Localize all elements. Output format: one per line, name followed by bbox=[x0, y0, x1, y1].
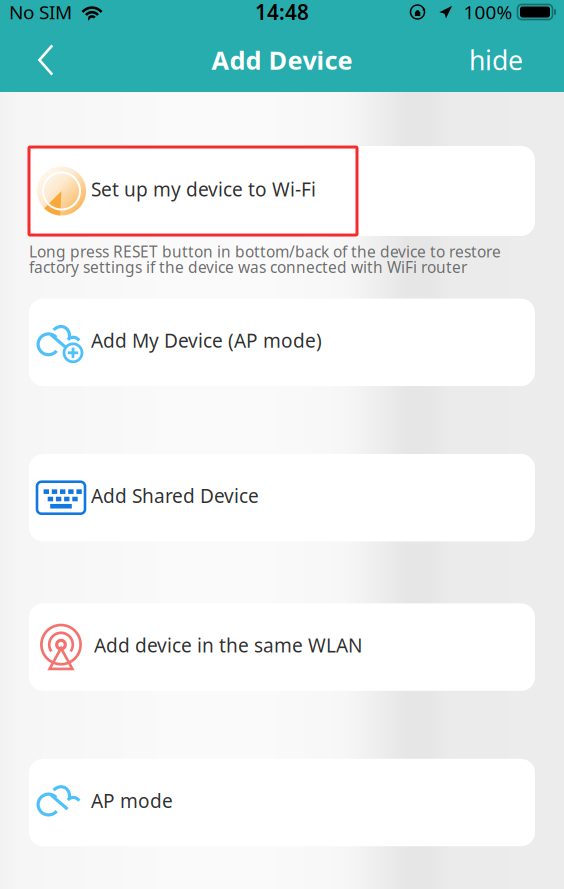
staticText: Add My Device (AP mode) bbox=[91, 327, 322, 353]
staticText: No SIM bbox=[9, 0, 72, 25]
button[interactable]: Add device in the same WLAN bbox=[29, 603, 535, 691]
button[interactable]: Back bbox=[0, 36, 78, 92]
staticText: Long press RESET button in bottom/back o… bbox=[29, 241, 501, 262]
staticText: Add Shared Device bbox=[91, 483, 259, 509]
staticText: Add Device bbox=[211, 43, 352, 77]
button[interactable]: Add My Device (AP mode) bbox=[29, 299, 535, 386]
staticText: 14:48 bbox=[255, 0, 309, 26]
button[interactable]: AP mode bbox=[29, 759, 535, 846]
staticText: AP mode bbox=[91, 787, 173, 813]
staticText: 100% bbox=[463, 0, 512, 25]
staticText: hide bbox=[469, 42, 523, 78]
button[interactable]: hide bbox=[449, 36, 564, 92]
staticText: factory settings if the device was conne… bbox=[29, 257, 467, 278]
staticText: Set up my device to Wi-Fi bbox=[91, 176, 316, 202]
button[interactable]: Add Shared Device bbox=[29, 454, 535, 541]
button[interactable]: Set up my device to Wi-Fi bbox=[29, 146, 535, 236]
staticText: Add device in the same WLAN bbox=[94, 632, 362, 658]
